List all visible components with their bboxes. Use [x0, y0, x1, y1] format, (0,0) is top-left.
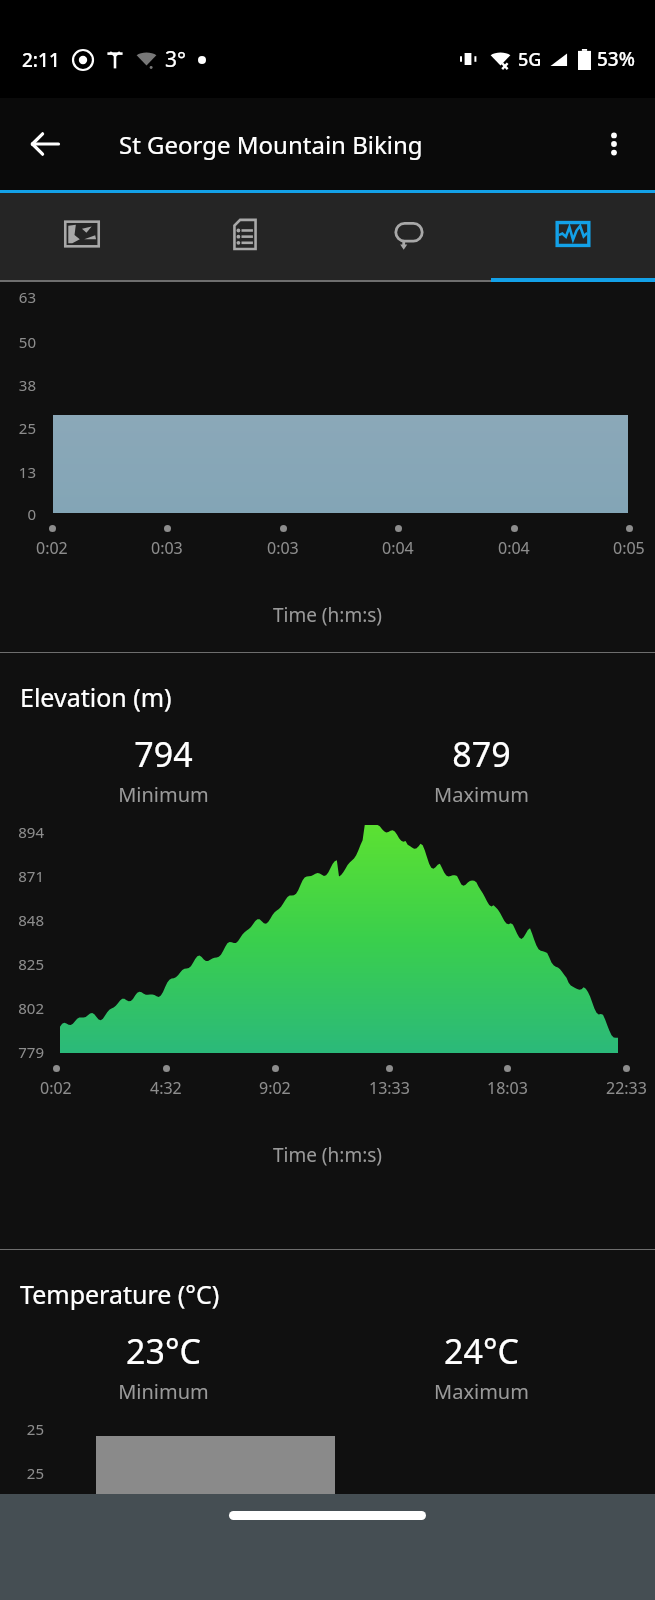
- staticText: 50: [0, 332, 36, 352]
- staticText: 794: [0, 731, 327, 777]
- staticText: 25: [0, 1463, 44, 1483]
- staticText: Minimum: [0, 781, 327, 808]
- staticText: 18:03: [487, 1077, 528, 1099]
- staticText: 879: [318, 731, 645, 777]
- staticText: 802: [0, 998, 44, 1018]
- staticText: 25: [0, 1419, 44, 1439]
- staticText: 13:33: [369, 1077, 410, 1099]
- staticText: Maximum: [318, 1378, 645, 1405]
- staticText: 894: [0, 822, 44, 842]
- staticText: 5G: [518, 47, 542, 72]
- staticText: 848: [0, 910, 44, 930]
- staticText: Elevation (m): [20, 680, 172, 714]
- staticText: 9:02: [259, 1077, 291, 1099]
- staticText: 13: [0, 462, 36, 482]
- staticText: 53%: [597, 46, 635, 72]
- staticText: St George Mountain Biking: [119, 128, 423, 161]
- staticText: 871: [0, 866, 44, 886]
- button[interactable]: Map: [0, 193, 163, 282]
- button[interactable]: Charts: [491, 193, 655, 282]
- staticText: 0:02: [40, 1077, 72, 1099]
- staticText: Maximum: [318, 781, 645, 808]
- staticText: 22:33: [606, 1077, 647, 1099]
- staticText: Time (h:m:s): [0, 602, 655, 628]
- button[interactable]: Details: [163, 193, 327, 282]
- staticText: 25: [0, 418, 36, 438]
- staticText: Time (h:m:s): [0, 1142, 655, 1168]
- staticText: 0:05: [613, 537, 645, 559]
- staticText: 0:03: [151, 537, 183, 559]
- staticText: 24°C: [318, 1328, 645, 1374]
- staticText: 3°: [165, 45, 186, 74]
- staticText: 2:11: [22, 47, 60, 73]
- staticText: 0:02: [36, 537, 68, 559]
- staticText: 38: [0, 375, 36, 395]
- staticText: 63: [0, 287, 36, 307]
- button[interactable]: Laps: [327, 193, 491, 282]
- staticText: Temperature (°C): [20, 1277, 220, 1311]
- staticText: 779: [0, 1042, 44, 1062]
- staticText: 4:32: [150, 1077, 182, 1099]
- staticText: 23°C: [0, 1328, 327, 1374]
- button[interactable]: Back: [14, 113, 76, 175]
- staticText: 0:03: [267, 537, 299, 559]
- staticText: 825: [0, 954, 44, 974]
- button[interactable]: More options: [583, 113, 645, 175]
- staticText: 0: [0, 504, 36, 524]
- staticText: Minimum: [0, 1378, 327, 1405]
- staticText: 0:04: [382, 537, 414, 559]
- staticText: 0:04: [498, 537, 530, 559]
